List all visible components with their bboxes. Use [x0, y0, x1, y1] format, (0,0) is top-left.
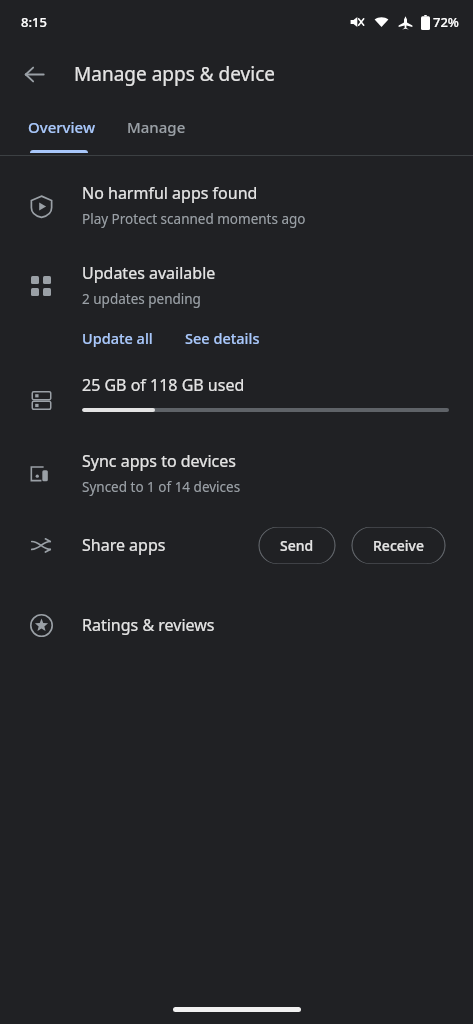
staticText: Sync apps to devices — [82, 450, 236, 472]
staticText: Overview — [28, 117, 95, 137]
button[interactable]: Send — [258, 527, 336, 564]
staticText: Manage apps & device — [74, 61, 275, 87]
staticText: Ratings & reviews — [82, 614, 215, 636]
staticText: No harmful apps found — [82, 182, 258, 204]
staticText: Play Protect scanned moments ago — [82, 210, 306, 228]
button[interactable]: Manage — [127, 117, 186, 137]
button[interactable]: 25 GB of 118 GB used — [0, 374, 473, 420]
button[interactable]: No harmful apps found — [0, 182, 473, 228]
button[interactable]: Sync apps to devices — [0, 450, 473, 496]
staticText: Manage — [127, 117, 186, 137]
button[interactable]: Update all — [82, 328, 153, 348]
staticText: Synced to 1 of 14 devices — [82, 478, 241, 496]
staticText: Send — [280, 536, 314, 555]
button[interactable]: Updates available — [0, 262, 473, 308]
button[interactable]: Back — [12, 52, 56, 96]
staticText: Receive — [373, 536, 424, 555]
button[interactable]: Overview — [28, 117, 95, 137]
button[interactable]: Ratings & reviews — [0, 594, 473, 656]
button[interactable]: See details — [185, 328, 260, 348]
button[interactable]: Receive — [351, 527, 446, 564]
staticText: Update all — [82, 328, 153, 348]
staticText: 72% — [433, 13, 459, 31]
staticText: See details — [185, 328, 260, 348]
staticText: 2 updates pending — [82, 290, 201, 308]
staticText: 8:15 — [21, 13, 47, 31]
staticText: Updates available — [82, 262, 216, 284]
staticText: Share apps — [82, 534, 166, 556]
button[interactable]: Share apps — [0, 514, 473, 576]
staticText: 25 GB of 118 GB used — [82, 374, 245, 396]
